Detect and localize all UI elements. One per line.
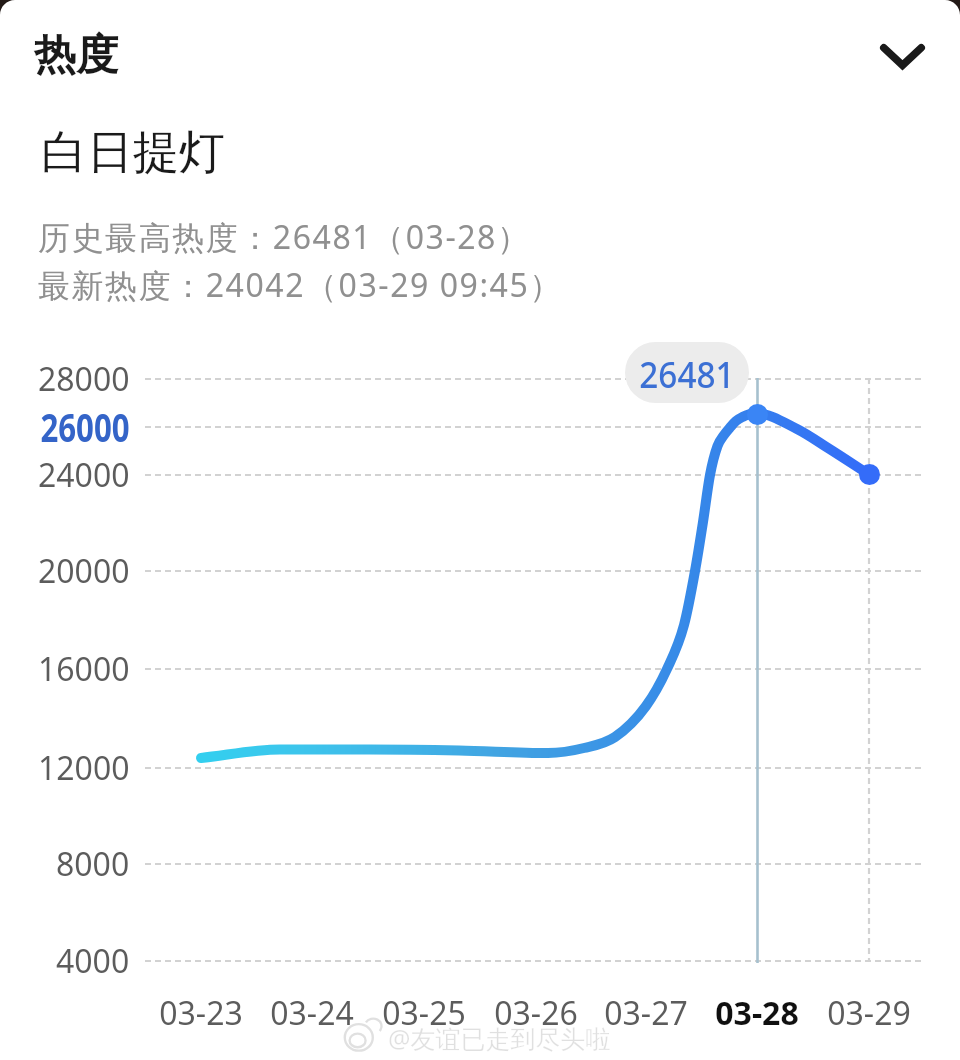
staticText: 8000 [56,842,130,886]
staticText: 26000 [40,400,130,453]
button[interactable]: 26481 [0,0,960,1060]
staticText: @友谊已走到尽头啦 [388,1021,611,1055]
staticText: 12000 [38,746,130,790]
staticText: 4000 [56,939,130,983]
staticText: 20000 [38,549,130,593]
button[interactable]: 03-25 [364,991,484,1035]
staticText: 03-24 [270,991,354,1035]
button[interactable]: 03-24 [252,991,372,1035]
staticText: 最新热度：24042（03-29 09:45） [38,263,563,307]
staticText: 03-26 [494,991,578,1035]
staticText: 03-28 [715,991,799,1035]
staticText: 历史最高热度：26481（03-28） [38,215,531,259]
staticText: 24000 [38,453,130,497]
button[interactable]: 03-27 [586,991,706,1035]
button[interactable]: Collapse [848,0,960,110]
staticText: 03-25 [382,991,466,1035]
button[interactable]: 白日提灯 [41,124,225,182]
staticText: 03-23 [159,991,243,1035]
staticText: 28000 [38,357,130,401]
button[interactable]: 03-23 [141,991,261,1035]
staticText: 03-27 [604,991,688,1035]
button[interactable]: 03-26 [476,991,596,1035]
staticText: 03-29 [827,991,911,1035]
button[interactable]: 03-29 [809,991,929,1035]
button[interactable]: 26481 [625,342,749,403]
staticText: 热度 [34,29,118,82]
staticText: 26481 [639,348,735,398]
staticText: 16000 [38,647,130,691]
button[interactable]: 03-28 [697,991,817,1035]
